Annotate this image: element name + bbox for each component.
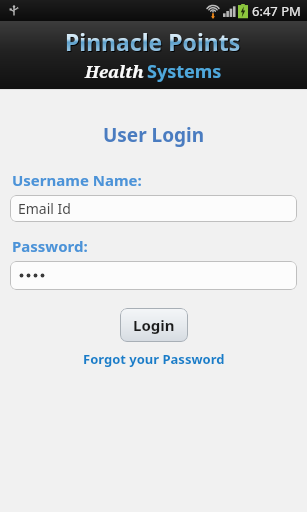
staticText: User Login bbox=[0, 122, 307, 148]
staticText: Password: bbox=[12, 236, 88, 256]
staticText: Systems bbox=[147, 59, 222, 84]
button[interactable]: Forgot your Password bbox=[0, 350, 307, 368]
staticText: Pinnacle Points bbox=[65, 26, 241, 57]
staticText: 6:47 PM bbox=[252, 2, 301, 20]
staticText: Health bbox=[85, 60, 144, 83]
staticText: Username Name: bbox=[12, 170, 142, 190]
button[interactable] bbox=[10, 261, 297, 290]
button[interactable]: Email Id bbox=[10, 195, 297, 222]
staticText: Forgot your Password bbox=[83, 350, 225, 368]
staticText: Pinnacle Points bbox=[66, 27, 242, 58]
button[interactable]: Login bbox=[120, 308, 188, 342]
staticText: Login bbox=[133, 315, 175, 335]
staticText: Email Id bbox=[18, 199, 71, 218]
